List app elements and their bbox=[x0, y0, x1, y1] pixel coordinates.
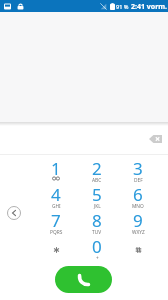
button[interactable]: 9 bbox=[119, 209, 157, 235]
staticText: 5 bbox=[92, 183, 102, 206]
staticText: 6 bbox=[133, 183, 143, 206]
staticText: 91 % bbox=[116, 3, 129, 10]
button[interactable]: 1 bbox=[37, 157, 75, 183]
staticText: 3 bbox=[133, 157, 143, 180]
staticText: 4 bbox=[51, 183, 61, 206]
staticText: 7 bbox=[51, 209, 61, 232]
button[interactable] bbox=[119, 235, 157, 261]
button[interactable]: 6 bbox=[119, 183, 157, 209]
button[interactable]: 8 bbox=[78, 209, 116, 235]
staticText: JKL bbox=[94, 203, 101, 210]
button[interactable]: 0 bbox=[78, 235, 116, 261]
button[interactable]: 2 bbox=[78, 157, 116, 183]
staticText: 2:41 vorm. bbox=[131, 2, 168, 12]
staticText: TUV bbox=[92, 229, 102, 236]
staticText: PQRS bbox=[50, 229, 63, 236]
staticText: GHI bbox=[52, 203, 61, 210]
button[interactable]: 5 bbox=[78, 183, 116, 209]
button[interactable]: Collapse keypad bbox=[4, 203, 24, 223]
button[interactable]: 4 bbox=[37, 183, 75, 209]
staticText: 0 bbox=[92, 235, 102, 258]
button[interactable]: 3 bbox=[119, 157, 157, 183]
button[interactable]: Backspace bbox=[145, 129, 165, 149]
button[interactable] bbox=[37, 235, 75, 261]
button[interactable]: 7 bbox=[37, 209, 75, 235]
button[interactable]: Call bbox=[55, 266, 112, 293]
staticText: DEF bbox=[134, 177, 143, 184]
staticText: ABC bbox=[92, 177, 102, 184]
staticText: + bbox=[96, 255, 99, 262]
staticText: WXYZ bbox=[132, 229, 145, 236]
staticText: 1 bbox=[51, 157, 61, 180]
staticText: 8 bbox=[92, 209, 102, 232]
staticText: 9 bbox=[133, 209, 143, 232]
staticText: MNO bbox=[132, 203, 144, 210]
staticText: 2 bbox=[92, 157, 102, 180]
